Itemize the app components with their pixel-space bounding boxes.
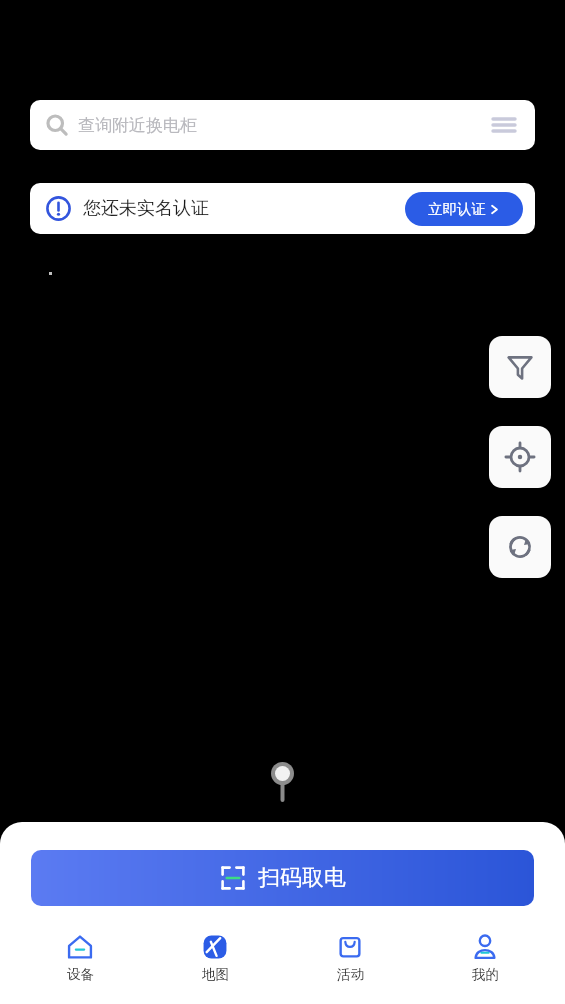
button[interactable]: Menu [489,110,519,140]
button[interactable]: 查询附近换电柜 [30,100,535,150]
staticText: 查询附近换电柜 [78,115,197,136]
button[interactable]: 我的 [430,932,540,985]
button[interactable]: 扫码取电 [31,850,534,906]
button[interactable]: 地图 [160,932,270,985]
button[interactable]: My location [489,426,551,488]
staticText: 我的 [472,966,499,983]
button[interactable]: 设备 [25,932,135,985]
staticText: 活动 [337,966,364,983]
button[interactable]: Refresh [489,516,551,578]
staticText: 扫码取电 [258,864,346,892]
button[interactable]: 立即认证 [405,192,523,226]
button[interactable]: 活动 [295,932,405,985]
staticText: 设备 [67,966,94,983]
button[interactable]: Filter [489,336,551,398]
staticText: 立即认证 [428,200,486,218]
staticText: 地图 [202,966,229,983]
button[interactable]: 您还未实名认证 [30,183,535,234]
staticText: 您还未实名认证 [83,197,209,220]
